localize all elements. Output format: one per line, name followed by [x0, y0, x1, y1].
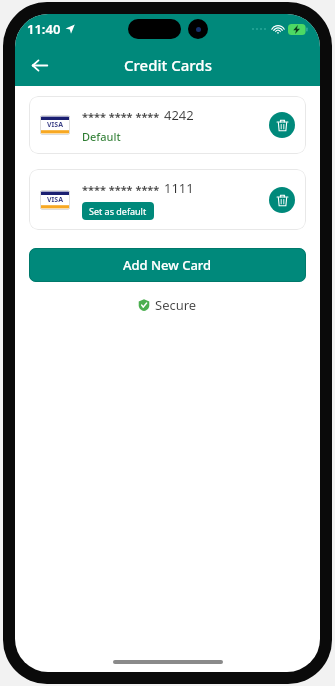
- button[interactable]: VISA: [29, 169, 306, 230]
- staticText: Default: [82, 129, 121, 144]
- staticText: **** **** ****: [82, 182, 160, 197]
- staticText: 4242: [164, 106, 194, 124]
- staticText: Add New Card: [123, 256, 212, 274]
- staticText: Secure: [155, 296, 197, 314]
- button[interactable]: Back: [21, 47, 57, 83]
- staticText: 11:40: [27, 20, 61, 38]
- button[interactable]: Add New Card: [29, 248, 306, 282]
- button[interactable]: Set as default: [82, 202, 154, 220]
- staticText: 1111: [164, 179, 194, 197]
- button[interactable]: VISA: [29, 96, 306, 154]
- staticText: **** **** ****: [82, 109, 160, 124]
- staticText: VISA: [47, 195, 63, 205]
- staticText: Set as default: [89, 205, 147, 217]
- staticText: VISA: [47, 120, 63, 130]
- button[interactable]: Delete card: [269, 187, 295, 213]
- button[interactable]: Delete card: [269, 112, 295, 138]
- staticText: Credit Cards: [124, 55, 212, 75]
